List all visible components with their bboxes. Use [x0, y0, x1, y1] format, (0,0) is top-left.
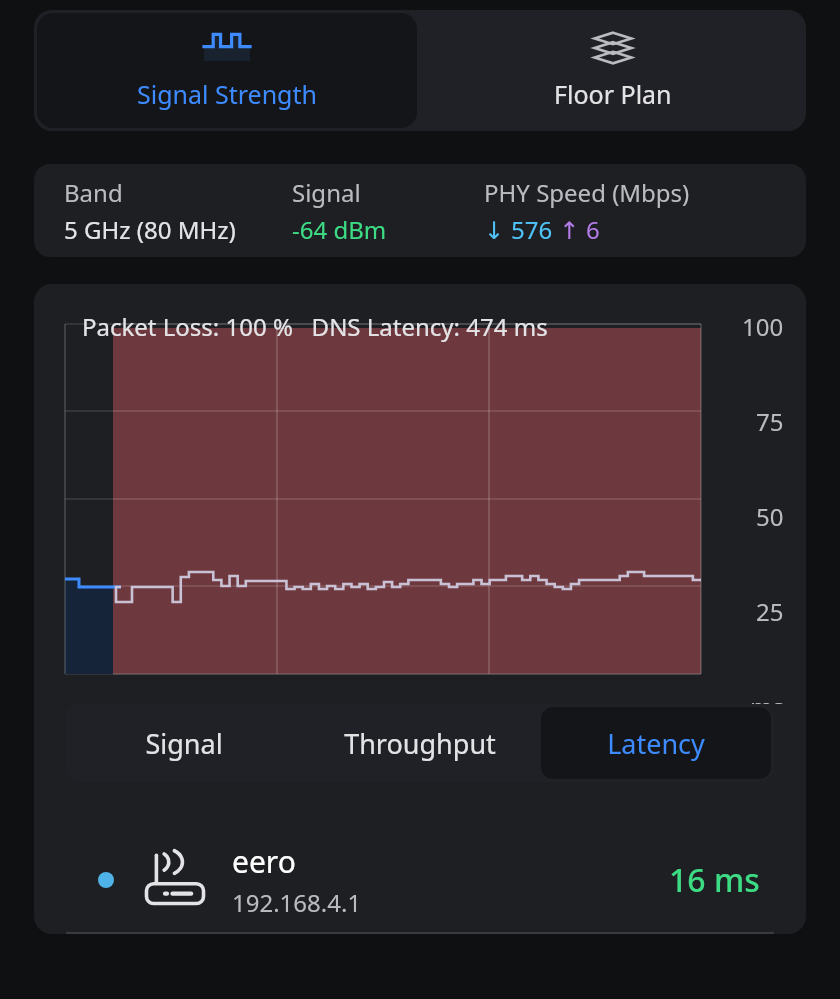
staticText: -64 dBm	[292, 213, 387, 246]
staticText: Band	[64, 176, 123, 209]
staticText: Throughput	[344, 725, 496, 762]
staticText: eero	[232, 841, 296, 882]
staticText: 25	[756, 595, 784, 628]
staticText: ↑	[553, 213, 586, 246]
staticText: Floor Plan	[554, 77, 672, 111]
staticText: Latency	[607, 725, 705, 762]
button[interactable]: Signal	[69, 707, 299, 779]
staticText: 75	[756, 405, 784, 438]
staticText: 6	[586, 213, 600, 246]
staticText: ms	[750, 690, 784, 704]
staticText: 16 ms	[669, 858, 760, 902]
button[interactable]: Floor Plan	[420, 10, 806, 131]
button[interactable]: Band	[34, 164, 806, 257]
staticText: Signal	[145, 725, 223, 762]
button[interactable]: Throughput	[305, 707, 535, 779]
staticText: Signal Strength	[137, 77, 317, 111]
button[interactable]: eero	[34, 828, 806, 932]
staticText: 50	[756, 500, 784, 533]
staticText: 192.168.4.1	[232, 886, 362, 919]
staticText: 100	[742, 310, 784, 343]
button[interactable]: Latency	[541, 707, 771, 779]
staticText: PHY Speed (Mbps)	[484, 176, 690, 209]
staticText: 5 GHz (80 MHz)	[64, 213, 236, 246]
staticText: ↓	[484, 213, 511, 246]
staticText: Packet Loss: 100 % DNS Latency: 474 ms	[82, 310, 548, 343]
staticText: 576	[511, 213, 553, 246]
button[interactable]: Signal Strength	[37, 13, 417, 128]
staticText: Signal	[292, 176, 361, 209]
